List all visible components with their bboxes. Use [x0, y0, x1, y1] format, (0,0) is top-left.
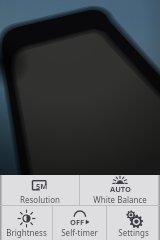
button[interactable]: AUTO	[80, 175, 160, 205]
staticText: OFF	[70, 217, 85, 227]
staticText: Settings	[118, 227, 149, 238]
button[interactable]: 5M	[0, 175, 79, 205]
staticText: AUTO	[110, 184, 131, 194]
staticText: White Balance	[93, 194, 147, 205]
button[interactable]: OFF	[53, 206, 106, 240]
button[interactable]: Settings	[107, 206, 160, 240]
staticText: Resolution	[20, 194, 60, 205]
staticText: Brightness	[6, 227, 47, 238]
button[interactable]: Brightness	[0, 206, 52, 240]
staticText: 5M	[36, 181, 48, 191]
staticText: Self-timer	[61, 227, 98, 238]
